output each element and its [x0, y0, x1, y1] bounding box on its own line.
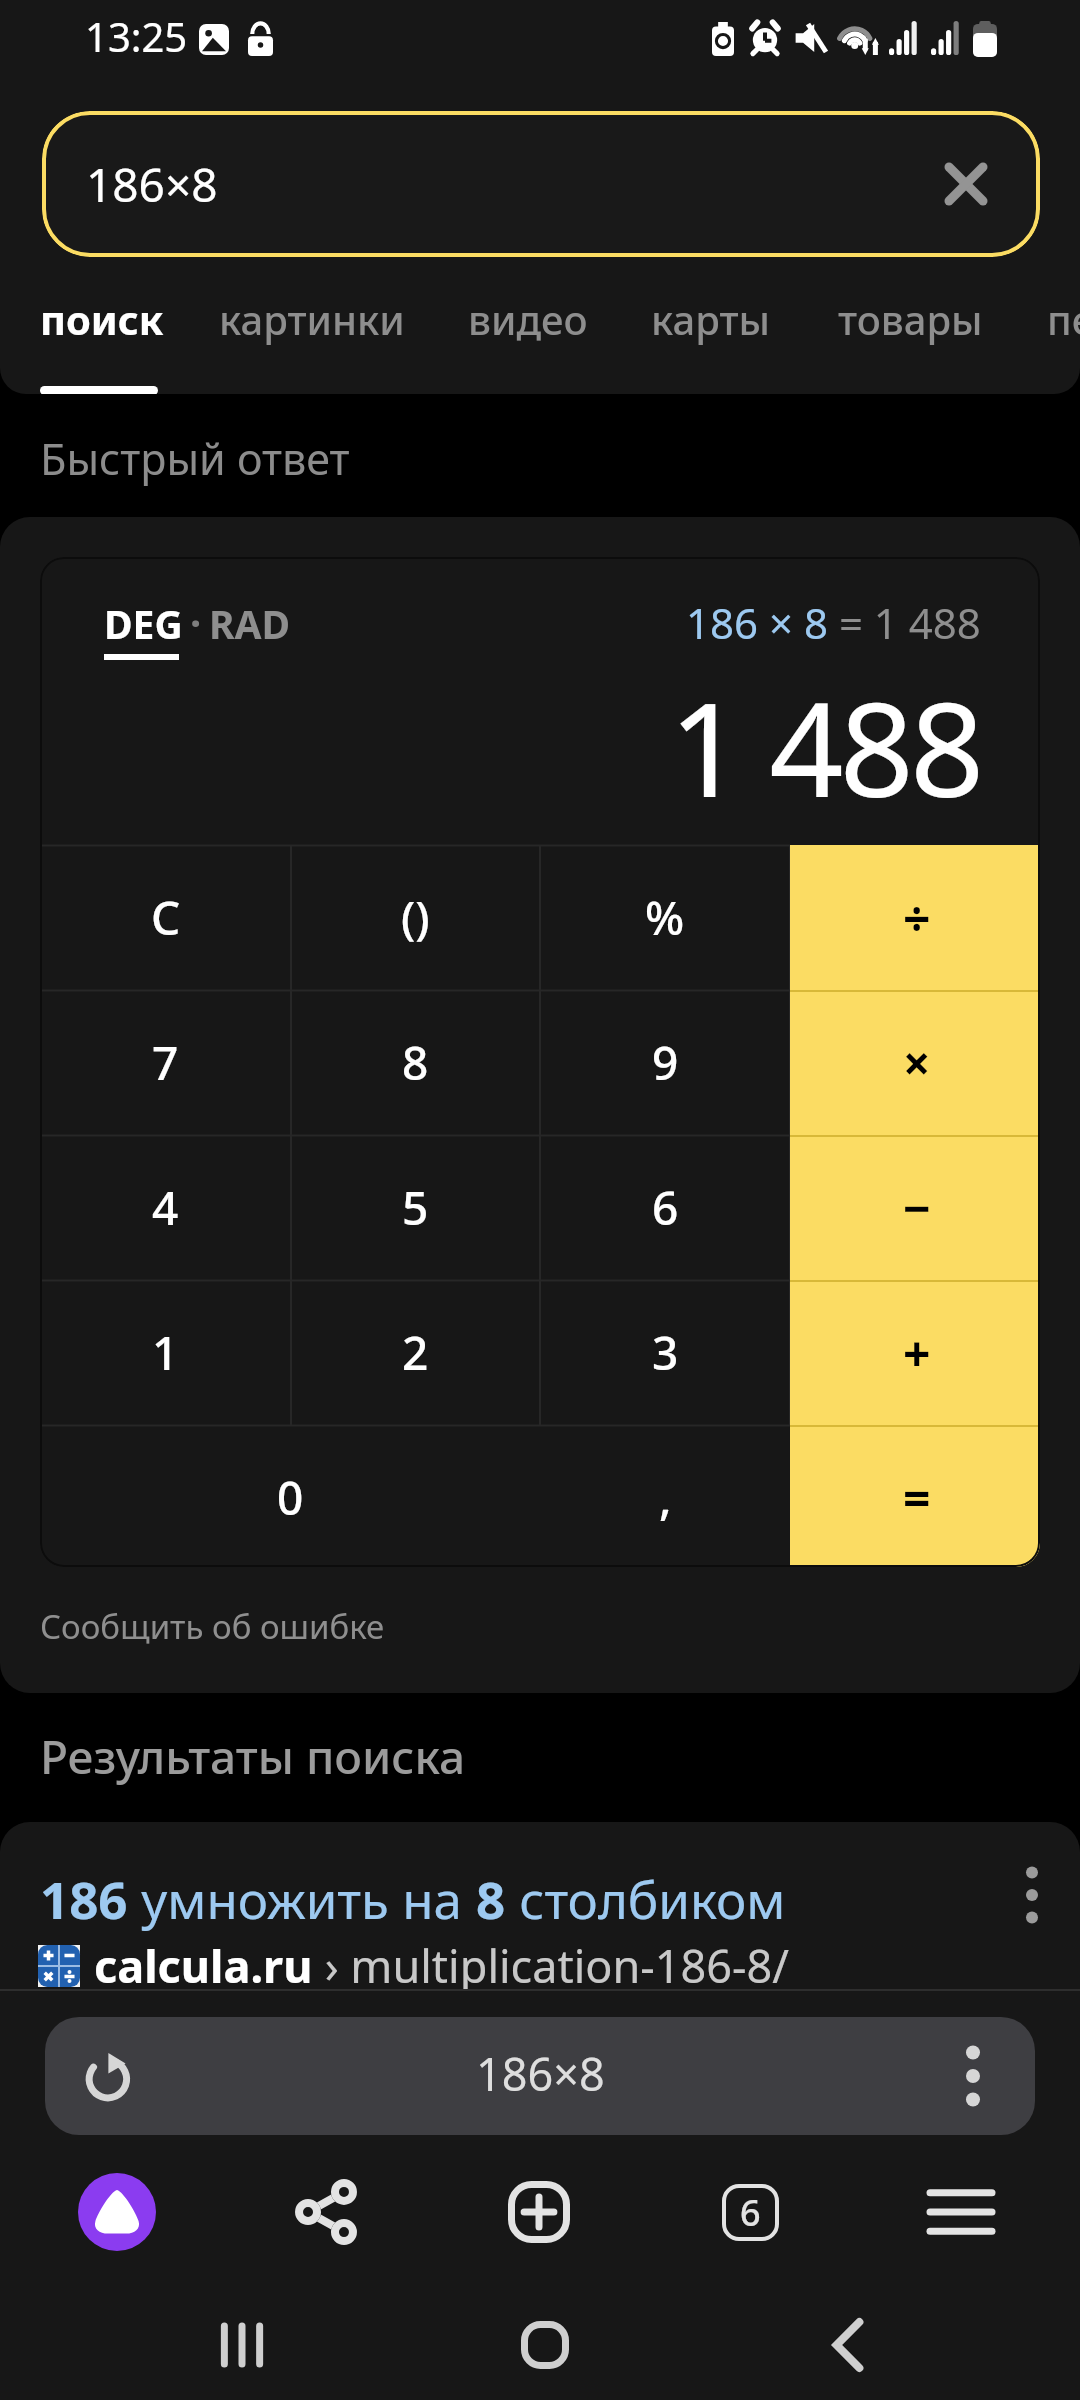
staticText: = — [903, 1465, 931, 1530]
staticText: видео — [468, 292, 588, 346]
button[interactable]: () — [291, 845, 540, 990]
button[interactable]: карты — [651, 292, 770, 394]
button[interactable]: Browser menu — [955, 2045, 991, 2107]
button[interactable]: Reload page — [45, 2017, 1035, 2135]
staticText: DEG — [104, 597, 183, 650]
staticText: , — [659, 1466, 672, 1529]
staticText: 186×8 — [476, 2043, 605, 2104]
button[interactable]: 186×8 — [42, 111, 1040, 257]
staticText: 7 — [152, 1031, 179, 1094]
button[interactable]: New tab — [491, 2164, 587, 2260]
button[interactable]: Share — [278, 2164, 374, 2260]
button[interactable]: 8 — [291, 990, 540, 1135]
staticText: 13:25 — [85, 9, 188, 63]
button[interactable]: картинки — [219, 292, 405, 394]
staticText: − — [903, 1175, 931, 1240]
button[interactable]: Reload page — [85, 2050, 137, 2102]
staticText: C — [151, 886, 181, 949]
staticText: 0 — [277, 1466, 304, 1529]
button[interactable]: , — [540, 1425, 790, 1567]
staticText: 8 — [402, 1031, 429, 1094]
button[interactable]: видео — [468, 292, 588, 394]
button[interactable]: 5 — [291, 1135, 540, 1280]
staticText: › multiplication-186-8/ — [313, 1935, 790, 1992]
staticText: () — [401, 886, 430, 949]
staticText: столбиком — [506, 1864, 786, 1933]
staticText: 9 — [652, 1031, 679, 1094]
button[interactable]: пе — [1047, 292, 1080, 394]
staticText: 3 — [652, 1321, 679, 1384]
button[interactable]: × — [790, 990, 1040, 1135]
staticText: RAD — [209, 597, 291, 650]
button[interactable]: поиск — [40, 292, 164, 394]
staticText: 186×8 — [86, 153, 218, 216]
staticText: 5 — [402, 1176, 429, 1239]
button[interactable]: Clear search — [930, 148, 1002, 220]
staticText: + — [903, 1320, 931, 1385]
staticText: · — [190, 595, 202, 649]
button[interactable]: = — [790, 1425, 1040, 1567]
staticText: 6 — [652, 1176, 679, 1239]
button[interactable]: Menu — [913, 2164, 1009, 2260]
button[interactable]: 2 — [291, 1280, 540, 1425]
button[interactable]: ÷ — [790, 845, 1040, 990]
button[interactable]: 4 — [40, 1135, 291, 1280]
staticText: поиск — [40, 292, 164, 346]
staticText: картинки — [219, 292, 405, 346]
button[interactable]: 0 — [40, 1425, 540, 1567]
button[interactable]: Home — [490, 2290, 600, 2400]
button[interactable]: Back — [793, 2290, 903, 2400]
staticText: 1 488 — [669, 658, 981, 818]
button[interactable]: 1 — [40, 1280, 291, 1425]
button[interactable]: Recent apps — [187, 2290, 297, 2400]
button[interactable]: товары — [838, 292, 983, 394]
staticText: товары — [838, 292, 983, 346]
staticText: карты — [651, 292, 770, 346]
button[interactable]: RAD — [209, 597, 291, 650]
button[interactable]: DEG — [104, 597, 183, 660]
staticText: пе — [1047, 292, 1080, 346]
button[interactable]: 7 — [40, 990, 291, 1135]
button[interactable]: − — [790, 1135, 1040, 1280]
button[interactable]: Open tabs: 6 — [702, 2164, 798, 2260]
button[interactable]: Alice assistant — [69, 2164, 165, 2260]
staticText: ÷ — [903, 885, 931, 950]
staticText: calcula.ru — [94, 1935, 313, 1992]
button[interactable]: % — [540, 845, 790, 990]
staticText: умножить на — [128, 1864, 476, 1933]
staticText: 186 × 8 — [686, 594, 828, 651]
staticText: Результаты поиска — [40, 1725, 466, 1788]
staticText: 8 — [476, 1864, 506, 1933]
button[interactable]: 3 — [540, 1280, 790, 1425]
staticText: Быстрый ответ — [40, 429, 350, 488]
button[interactable]: Сообщить об ошибке — [40, 1604, 385, 1649]
button[interactable]: 186 — [0, 1822, 1080, 1992]
staticText: % — [645, 886, 685, 949]
button[interactable]: 6 — [540, 1135, 790, 1280]
staticText: × — [903, 1030, 931, 1095]
staticText: 2 — [402, 1321, 429, 1384]
staticText: 4 — [152, 1176, 179, 1239]
staticText: Сообщить об ошибке — [40, 1604, 385, 1649]
staticText: 6 — [740, 2188, 761, 2237]
staticText: 186 — [40, 1864, 128, 1933]
button[interactable]: C — [40, 845, 291, 990]
staticText: 1 — [152, 1321, 179, 1384]
button[interactable]: 9 — [540, 990, 790, 1135]
button[interactable]: More options — [1008, 1860, 1056, 1930]
button[interactable]: + — [790, 1280, 1040, 1425]
staticText: = 1 488 — [828, 594, 981, 651]
